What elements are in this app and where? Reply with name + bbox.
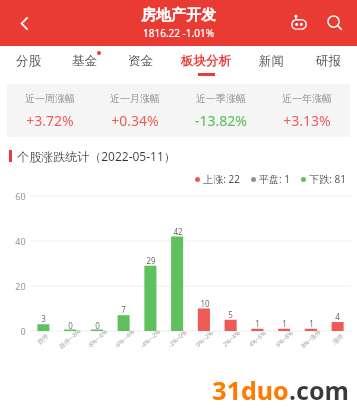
staticText: 分股 <box>16 53 41 69</box>
staticText: 20 <box>15 280 26 292</box>
staticText: 涨停 <box>331 332 345 346</box>
staticText: 4 <box>335 311 340 322</box>
staticText: 6%~8% <box>274 329 295 349</box>
staticText: 1 <box>309 318 314 329</box>
staticText: 个股涨跌统计（2022-05-11） <box>17 148 176 164</box>
staticText: 42 <box>173 226 183 237</box>
staticText: 跌停~-8% <box>58 327 82 351</box>
staticText: 资金 <box>128 53 153 69</box>
staticText: 10 <box>200 298 210 309</box>
staticText: 跌停 <box>36 332 50 346</box>
staticText: 60 <box>15 190 26 202</box>
button[interactable]: Back <box>4 3 44 43</box>
staticText: +3.72% <box>26 111 74 130</box>
staticText: 7 <box>121 304 126 315</box>
staticText: 房地产开发 <box>141 6 216 25</box>
staticText: 0 <box>95 320 100 331</box>
staticText: 0 <box>68 320 73 331</box>
button[interactable]: 新闻 <box>243 46 300 80</box>
staticText: .com <box>289 373 349 407</box>
staticText: +3.13% <box>283 111 331 130</box>
staticText: -4%~-2% <box>138 328 162 350</box>
staticText: 4%~6% <box>247 329 268 349</box>
staticText: 平盘: 1 <box>259 172 290 186</box>
staticText: 0 <box>20 325 26 337</box>
button[interactable]: Search <box>319 7 351 39</box>
staticText: 5 <box>228 309 233 320</box>
button[interactable]: 基金 <box>56 46 112 80</box>
staticText: 1 <box>282 318 287 329</box>
staticText: 1816.22 -1.01% <box>143 26 214 40</box>
staticText: 8%~涨停 <box>299 328 323 350</box>
staticText: 近一季涨幅 <box>196 92 246 105</box>
staticText: 近一周涨幅 <box>25 92 75 105</box>
staticText: 近一年涨幅 <box>282 92 332 105</box>
staticText: -2%~0% <box>166 328 189 350</box>
staticText: 1 <box>255 318 260 329</box>
staticText: 31duo <box>212 373 289 407</box>
staticText: 2%~4% <box>221 329 242 349</box>
staticText: 新闻 <box>259 53 284 69</box>
staticText: -13.82% <box>195 111 247 130</box>
staticText: 研报 <box>316 53 341 69</box>
button[interactable]: 研报 <box>300 46 357 80</box>
staticText: 40 <box>15 235 26 247</box>
staticText: -6%~-4% <box>112 328 136 350</box>
staticText: 近一月涨幅 <box>110 92 160 105</box>
button[interactable]: 分股 <box>0 46 56 80</box>
staticText: 29 <box>146 255 156 266</box>
staticText: 0%~2% <box>194 329 215 349</box>
button[interactable]: 板块分析 <box>169 46 243 80</box>
staticText: 下跌: 81 <box>309 172 346 186</box>
staticText: -8%~-6% <box>85 328 109 350</box>
button[interactable]: Assistant <box>283 7 315 39</box>
staticText: 基金 <box>72 53 97 69</box>
staticText: 板块分析 <box>181 53 231 69</box>
staticText: 3 <box>41 313 46 324</box>
staticText: 上涨: 22 <box>203 172 240 186</box>
button[interactable]: 资金 <box>112 46 169 80</box>
staticText: +0.34% <box>111 111 159 130</box>
